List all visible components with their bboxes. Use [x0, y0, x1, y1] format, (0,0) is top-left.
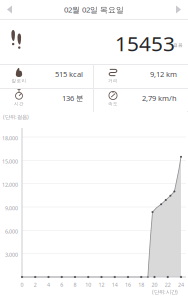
staticText: 4: [47, 281, 50, 288]
staticText: 9,000: [5, 204, 18, 212]
staticText: 22: [165, 281, 171, 288]
staticText: 24: [178, 281, 184, 288]
button[interactable]: 거리: [94, 65, 187, 88]
staticText: 6,000: [5, 228, 18, 235]
staticText: 16: [125, 281, 131, 288]
staticText: 0: [20, 281, 23, 288]
staticText: 12: [98, 281, 104, 288]
staticText: 18,000: [2, 134, 18, 142]
staticText: 2: [34, 281, 37, 288]
staticText: 14: [112, 281, 118, 288]
staticText: 6: [60, 281, 63, 288]
staticText: 20: [151, 281, 157, 288]
staticText: 10: [85, 281, 91, 288]
staticText: 12,000: [2, 181, 18, 188]
staticText: 2,79 km/h: [142, 93, 177, 103]
staticText: 칼로리: [11, 78, 26, 84]
staticText: 02월 02일 목요일: [64, 4, 124, 15]
staticText: (단위: 시간): [152, 288, 178, 295]
staticText: 18: [138, 281, 144, 288]
staticText: 속도: [108, 101, 118, 107]
button[interactable]: 02월 02일 목요일: [64, 0, 124, 19]
staticText: 걸음: [173, 42, 183, 48]
staticText: 거리: [108, 78, 118, 84]
staticText: 15,000: [2, 158, 18, 165]
staticText: 시간: [14, 101, 24, 107]
button[interactable]: Next day: [169, 0, 188, 20]
staticText: 3,000: [5, 251, 18, 258]
staticText: 136 분: [62, 93, 83, 103]
staticText: 15453: [115, 29, 175, 57]
button[interactable]: 칼로리: [0, 65, 93, 88]
staticText: 9,12 km: [150, 69, 177, 79]
button[interactable]: 속도: [94, 89, 187, 112]
button[interactable]: Previous day: [0, 0, 19, 20]
staticText: 8: [73, 281, 76, 288]
staticText: 515 kcal: [55, 69, 83, 79]
staticText: (단위: 걸음): [3, 113, 29, 120]
button[interactable]: 시간: [0, 89, 93, 112]
